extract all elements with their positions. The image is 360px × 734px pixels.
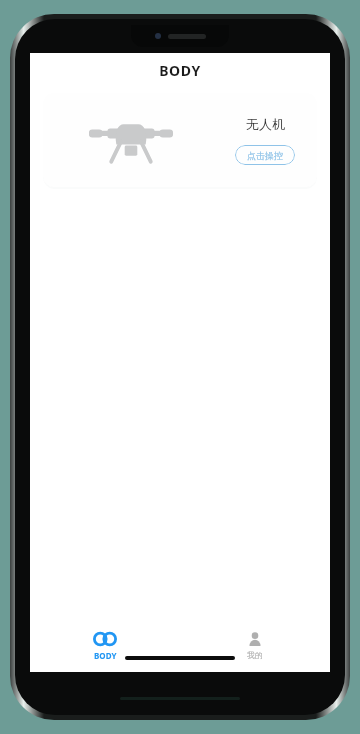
- staticText: 点击操控: [247, 150, 283, 161]
- button[interactable]: 点击操控: [235, 145, 295, 165]
- staticText: BODY: [159, 61, 201, 80]
- staticText: 我的: [247, 650, 263, 660]
- button[interactable]: BODY: [30, 620, 180, 672]
- button[interactable]: 无人机: [43, 93, 317, 187]
- button[interactable]: 我的: [180, 620, 330, 672]
- staticText: BODY: [94, 650, 117, 661]
- staticText: 无人机: [246, 116, 285, 132]
